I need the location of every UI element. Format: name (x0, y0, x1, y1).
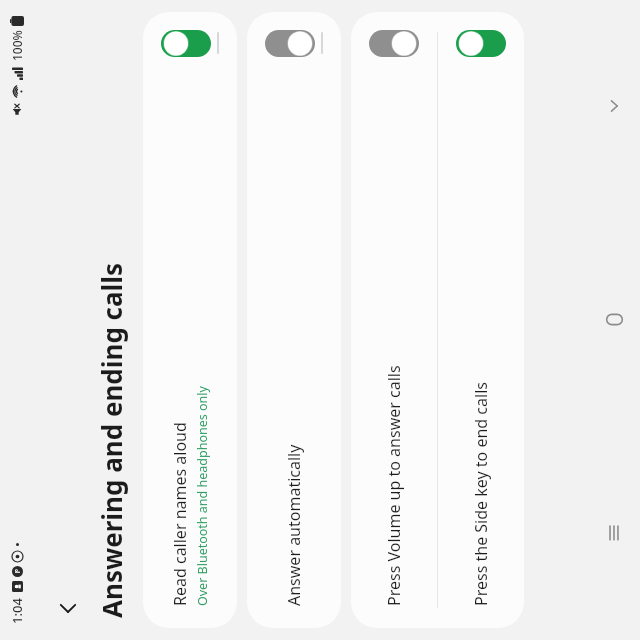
staticText: 100% (9, 30, 25, 61)
button[interactable]: Off (369, 30, 419, 57)
button[interactable]: Back (588, 0, 640, 213)
button[interactable]: On (456, 30, 506, 57)
staticText: Press the Side key to end calls (470, 382, 492, 606)
button[interactable]: Press Volume up to answer calls (351, 12, 437, 628)
button[interactable]: Home (588, 213, 640, 426)
button[interactable]: Recent apps (588, 426, 640, 640)
button[interactable]: Navigate up (44, 584, 92, 632)
staticText: 1:04 (8, 598, 26, 624)
staticText: Press Volume up to answer calls (383, 365, 405, 606)
staticText: Over Bluetooth and headphones only (194, 386, 211, 606)
staticText: Answer automatically (283, 444, 305, 606)
button[interactable]: Answer automatically (247, 12, 341, 628)
staticText: Answering and ending calls (94, 262, 129, 618)
button[interactable]: On (161, 30, 211, 57)
button[interactable]: Read caller names aloud (143, 12, 237, 628)
button[interactable]: Press the Side key to end calls (438, 12, 524, 628)
staticText: Read caller names aloud (169, 422, 191, 606)
button[interactable]: Off (265, 30, 315, 57)
